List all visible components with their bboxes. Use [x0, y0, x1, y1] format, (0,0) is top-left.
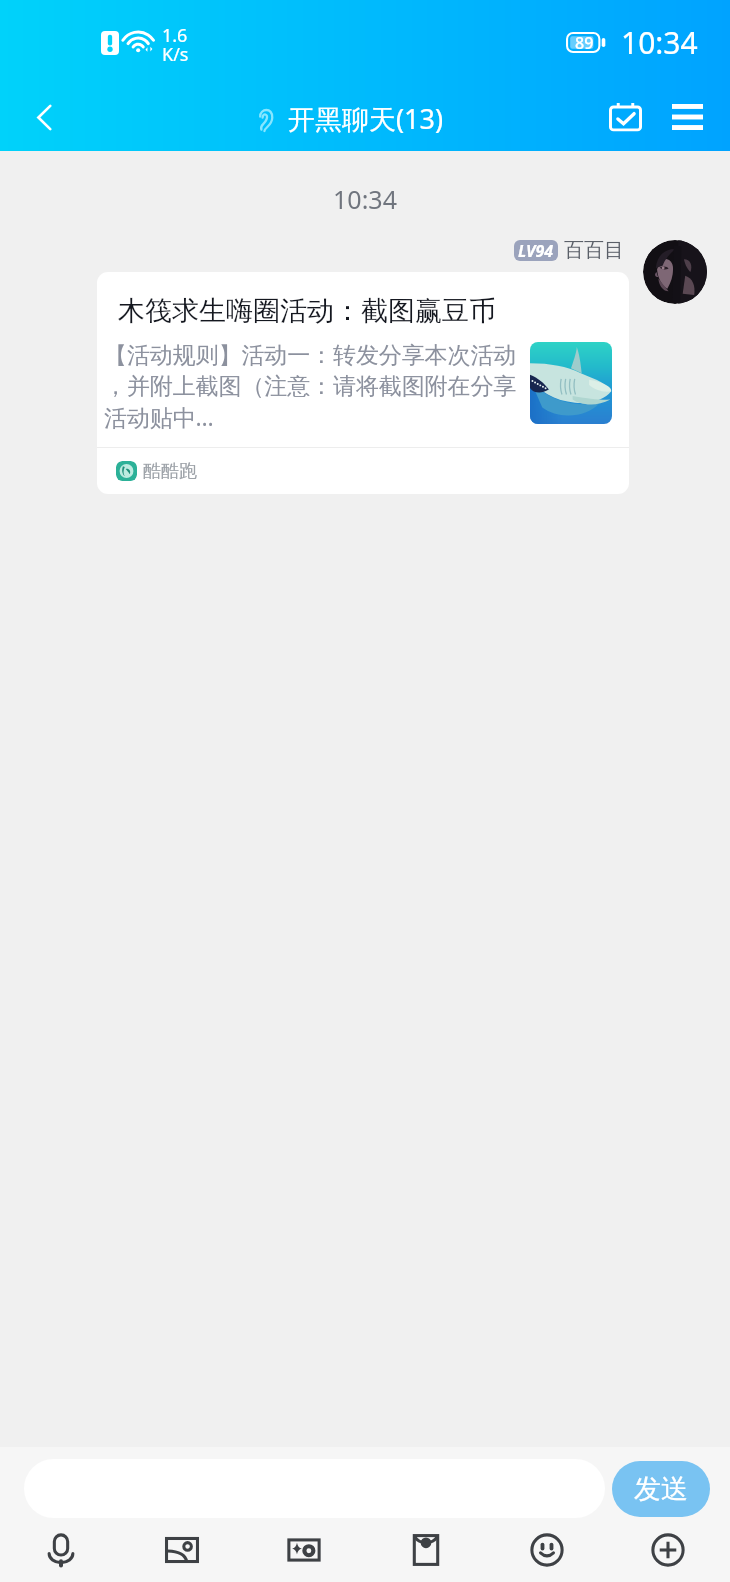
button[interactable]: 发送	[612, 1461, 710, 1517]
button[interactable]: Sign in calendar	[594, 85, 656, 151]
staticText: 发送	[634, 1472, 688, 1506]
button[interactable]: Photo	[151, 1518, 213, 1582]
button[interactable]: Red packet	[395, 1518, 457, 1582]
button[interactable]: Back	[0, 85, 88, 151]
staticText: 开黑聊天(13)	[288, 100, 444, 137]
staticText: 10:34	[0, 182, 730, 216]
button[interactable]: 木筏求生嗨圈活动：截图赢豆币	[97, 272, 629, 494]
button[interactable]: Sticker	[273, 1518, 335, 1582]
staticText: 木筏求生嗨圈活动：截图赢豆币	[118, 294, 496, 328]
staticText: 10:34	[621, 22, 698, 63]
staticText: LV94	[518, 240, 554, 261]
staticText: 酷酷跑	[143, 460, 197, 483]
staticText: 【活动规则】活动一：转发分享本次活动 ，并附上截图（注意：请将截图附在分享 活动…	[104, 341, 517, 433]
button[interactable]: Avatar of 百百目	[643, 240, 707, 304]
button[interactable]: Voice message	[30, 1518, 92, 1582]
button[interactable]: More	[637, 1518, 699, 1582]
staticText: 89	[575, 32, 594, 53]
staticText: 1.6 K/s	[162, 23, 189, 66]
button[interactable]: Menu	[656, 85, 718, 151]
staticText: 百百目	[564, 238, 624, 263]
button[interactable]: Emoji	[516, 1518, 578, 1582]
